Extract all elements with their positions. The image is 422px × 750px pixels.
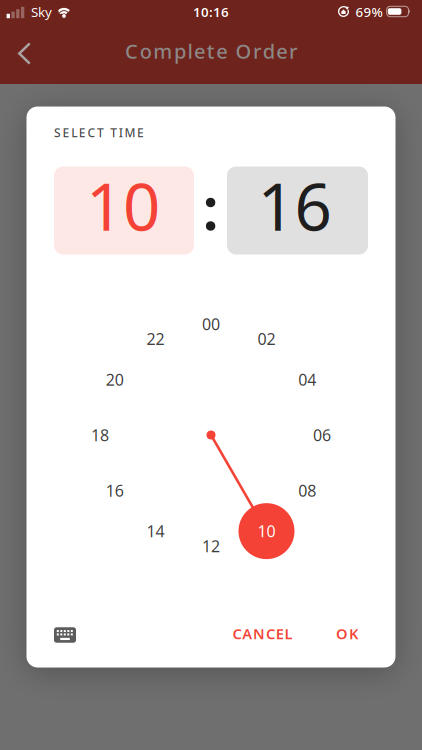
staticText: 08 <box>298 480 316 501</box>
staticText: 10 <box>257 520 275 542</box>
button[interactable]: 04 <box>298 369 316 390</box>
staticText: 14 <box>146 520 164 542</box>
staticText: 12 <box>202 535 220 557</box>
button[interactable]: 02 <box>257 328 275 349</box>
button[interactable] <box>17 42 31 65</box>
button[interactable]: 12 <box>202 535 220 557</box>
staticText: 18 <box>91 424 109 446</box>
button[interactable] <box>53 626 77 644</box>
staticText: 02 <box>257 328 275 349</box>
button[interactable]: 16 <box>227 166 368 254</box>
button[interactable]: CANCEL <box>224 615 300 652</box>
staticText: 69% <box>355 3 382 21</box>
staticText: 20 <box>106 369 124 390</box>
button[interactable]: 16 <box>106 480 124 501</box>
button[interactable]: 18 <box>91 424 109 446</box>
button[interactable]: 14 <box>146 520 164 542</box>
staticText: 16 <box>257 162 331 249</box>
staticText: 16 <box>106 480 124 501</box>
staticText: 06 <box>313 424 331 446</box>
staticText: 10:16 <box>193 3 229 21</box>
staticText: 22 <box>146 328 164 349</box>
button[interactable]: 20 <box>106 369 124 390</box>
staticText: Complete Order <box>125 38 297 64</box>
staticText: OK <box>336 624 358 643</box>
staticText: CANCEL <box>232 624 292 643</box>
button[interactable]: 06 <box>313 424 331 446</box>
staticText: SELECT TIME <box>54 124 144 140</box>
button[interactable]: 08 <box>298 480 316 501</box>
staticText: 00 <box>202 313 220 335</box>
button[interactable]: OK <box>328 615 366 652</box>
button[interactable]: 10 <box>238 503 294 559</box>
staticText: 04 <box>298 369 316 390</box>
button[interactable]: 00 <box>202 313 220 335</box>
staticText: 10 <box>86 162 160 249</box>
staticText: Sky <box>31 3 52 21</box>
button[interactable]: 10 <box>54 166 194 254</box>
button[interactable]: 22 <box>146 328 164 349</box>
